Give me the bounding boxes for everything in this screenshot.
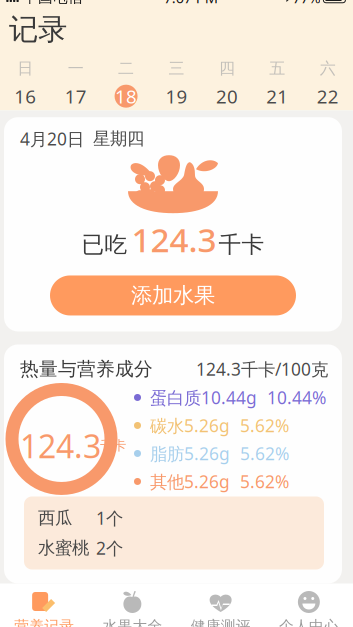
staticText: 水果大全 — [102, 617, 162, 627]
staticText: 124.3 — [20, 424, 101, 467]
staticText: 5.62% — [240, 442, 289, 465]
staticText: 1个 — [96, 506, 123, 529]
staticText: 16 — [14, 84, 36, 109]
staticText: 碳水5.26g — [150, 414, 230, 437]
button[interactable]: 16 — [8, 84, 42, 108]
staticText: 10.44% — [267, 386, 326, 409]
staticText: 7:07 PM — [164, 0, 218, 7]
staticText: 五 — [269, 58, 285, 78]
staticText: 124.3千卡/100克 — [196, 357, 328, 380]
staticText: 2个 — [96, 536, 123, 559]
staticText: 一 — [68, 58, 84, 78]
staticText: 日 — [17, 58, 33, 78]
staticText: 营养记录 — [14, 617, 74, 627]
staticText: 21 — [266, 84, 288, 109]
button[interactable]: 20 — [210, 84, 244, 108]
staticText: 19 — [165, 84, 187, 109]
staticText: 18 — [115, 84, 137, 109]
button[interactable]: 健康测评 — [176, 583, 265, 627]
staticText: 已吃 — [81, 231, 127, 259]
staticText: 记录 — [9, 11, 67, 47]
button[interactable]: 个人中心 — [265, 583, 353, 627]
button[interactable]: 17 — [59, 84, 93, 108]
button[interactable]: 水果大全 — [88, 583, 176, 627]
button[interactable]: 18 — [109, 84, 143, 108]
staticText: 千卡 — [218, 231, 264, 259]
staticText: 4月20日 — [20, 127, 84, 150]
staticText: 22 — [317, 84, 339, 109]
staticText: 77% — [292, 0, 320, 7]
button[interactable]: 添加水果 — [50, 275, 296, 315]
staticText: 5.62% — [240, 470, 289, 493]
staticText: 千卡 — [100, 437, 126, 454]
button[interactable]: 21 — [260, 84, 294, 108]
staticText: 其他5.26g — [150, 470, 230, 493]
staticText: 水蜜桃 — [38, 537, 89, 559]
staticText: 124.3 — [131, 217, 216, 261]
button[interactable]: 19 — [159, 84, 193, 108]
staticText: 西瓜 — [38, 507, 72, 529]
staticText: 三 — [168, 58, 184, 78]
staticText: 17 — [65, 84, 87, 109]
staticText: 20 — [216, 84, 238, 109]
staticText: 个人中心 — [279, 617, 339, 627]
staticText: 二 — [118, 58, 134, 78]
button[interactable]: 22 — [311, 84, 345, 108]
staticText: 热量与营养成分 — [20, 357, 153, 380]
button[interactable]: 营养记录 — [0, 583, 88, 627]
staticText: 星期四 — [93, 128, 144, 149]
staticText: 脂肪5.26g — [150, 442, 230, 465]
staticText: 5.62% — [240, 414, 289, 437]
staticText: 添加水果 — [131, 282, 215, 309]
staticText: 中国电信 — [23, 0, 83, 6]
staticText: 健康测评 — [191, 617, 251, 627]
staticText: 四 — [219, 58, 235, 78]
staticText: 六 — [320, 58, 336, 78]
staticText: 蛋白质10.44g — [150, 386, 257, 409]
